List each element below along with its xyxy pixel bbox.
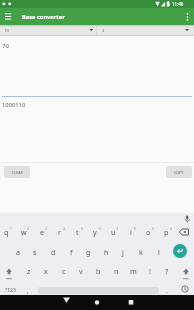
staticText: 8 — [134, 226, 136, 231]
staticText: v — [79, 266, 83, 276]
staticText: n — [114, 266, 119, 276]
button[interactable]: r — [51, 224, 67, 240]
staticText: 1 — [10, 226, 12, 231]
button[interactable]: h — [98, 244, 114, 260]
staticText: s — [33, 247, 37, 257]
staticText: 2 — [102, 28, 105, 34]
staticText: ! — [149, 266, 151, 276]
button[interactable]: b — [90, 263, 106, 279]
staticText: w — [21, 227, 27, 237]
staticText: r — [58, 227, 61, 237]
button[interactable]: y — [87, 224, 103, 240]
button[interactable]: x — [38, 263, 54, 279]
staticText: 7 — [116, 226, 118, 231]
button[interactable]: o — [140, 224, 156, 240]
button[interactable]: l — [151, 244, 167, 260]
staticText: ?123 — [5, 287, 16, 294]
button[interactable]: ?123 — [2, 282, 18, 298]
button[interactable]: f — [63, 244, 79, 260]
staticText: f — [70, 247, 73, 257]
button[interactable]: . — [159, 282, 175, 298]
staticText: 4 — [63, 226, 65, 231]
staticText: 3 — [45, 226, 47, 231]
staticText: CLEAR — [12, 170, 23, 175]
staticText: 2 — [27, 226, 29, 231]
staticText: t — [76, 227, 79, 237]
button[interactable] — [182, 9, 194, 25]
staticText: p — [164, 227, 169, 237]
staticText: . — [166, 286, 168, 295]
button[interactable]: v — [73, 263, 89, 279]
button[interactable]: d — [45, 244, 61, 260]
button[interactable] — [176, 224, 192, 240]
button[interactable]: u — [105, 224, 121, 240]
button[interactable]: ! — [142, 263, 158, 279]
staticText: q — [4, 227, 9, 237]
button[interactable] — [1, 264, 17, 280]
staticText: a — [16, 247, 21, 257]
staticText: g — [86, 247, 91, 257]
staticText: 0 — [170, 226, 172, 231]
staticText: 11:46 — [172, 1, 184, 7]
button[interactable]: 2 — [97, 25, 194, 36]
button[interactable]: t — [69, 224, 85, 240]
button[interactable]: g — [80, 244, 96, 260]
staticText: h — [104, 247, 109, 257]
staticText: m — [130, 266, 137, 276]
button[interactable]: n — [108, 263, 124, 279]
staticText: u — [111, 227, 116, 237]
staticText: l — [158, 247, 160, 257]
staticText: 70 — [2, 42, 9, 50]
button[interactable]: m — [125, 263, 141, 279]
button[interactable] — [2, 10, 16, 22]
button[interactable]: q — [0, 224, 14, 240]
button[interactable]: ? — [159, 263, 175, 279]
button[interactable]: 10 — [0, 25, 96, 36]
staticText: b — [96, 266, 101, 276]
button[interactable] — [177, 281, 193, 297]
button[interactable]: , — [20, 282, 36, 298]
button[interactable] — [58, 295, 75, 310]
staticText: , — [27, 286, 29, 295]
button[interactable] — [89, 295, 105, 310]
staticText: j — [122, 247, 124, 257]
staticText: COPY — [174, 170, 184, 175]
button[interactable] — [123, 295, 139, 310]
staticText: k — [139, 247, 143, 257]
button[interactable] — [173, 244, 187, 258]
button[interactable]: p — [158, 224, 174, 240]
staticText: 9 — [152, 226, 154, 231]
button[interactable]: z — [21, 263, 37, 279]
staticText: x — [44, 266, 48, 276]
staticText: z — [27, 266, 31, 276]
staticText: 1000110 — [2, 101, 26, 109]
button[interactable]: e — [34, 224, 50, 240]
button[interactable]: a — [10, 244, 26, 260]
button[interactable]: w — [16, 224, 32, 240]
button[interactable]: s — [27, 244, 43, 260]
staticText: i — [130, 227, 132, 237]
button[interactable]: COPY — [166, 166, 192, 178]
staticText: e — [40, 227, 45, 237]
button[interactable] — [178, 264, 194, 280]
button[interactable]: j — [115, 244, 131, 260]
staticText: y — [93, 227, 97, 237]
button[interactable]: k — [133, 244, 149, 260]
staticText: c — [62, 266, 66, 276]
staticText: 6 — [99, 226, 101, 231]
staticText: 10 — [4, 28, 9, 34]
staticText: 5 — [81, 226, 83, 231]
staticText: o — [146, 227, 151, 237]
staticText: ? — [165, 266, 169, 276]
button[interactable]: c — [56, 263, 72, 279]
staticText: d — [51, 247, 56, 257]
button[interactable]: CLEAR — [4, 166, 30, 178]
staticText: Base converter — [22, 13, 65, 21]
button[interactable]: i — [123, 224, 139, 240]
